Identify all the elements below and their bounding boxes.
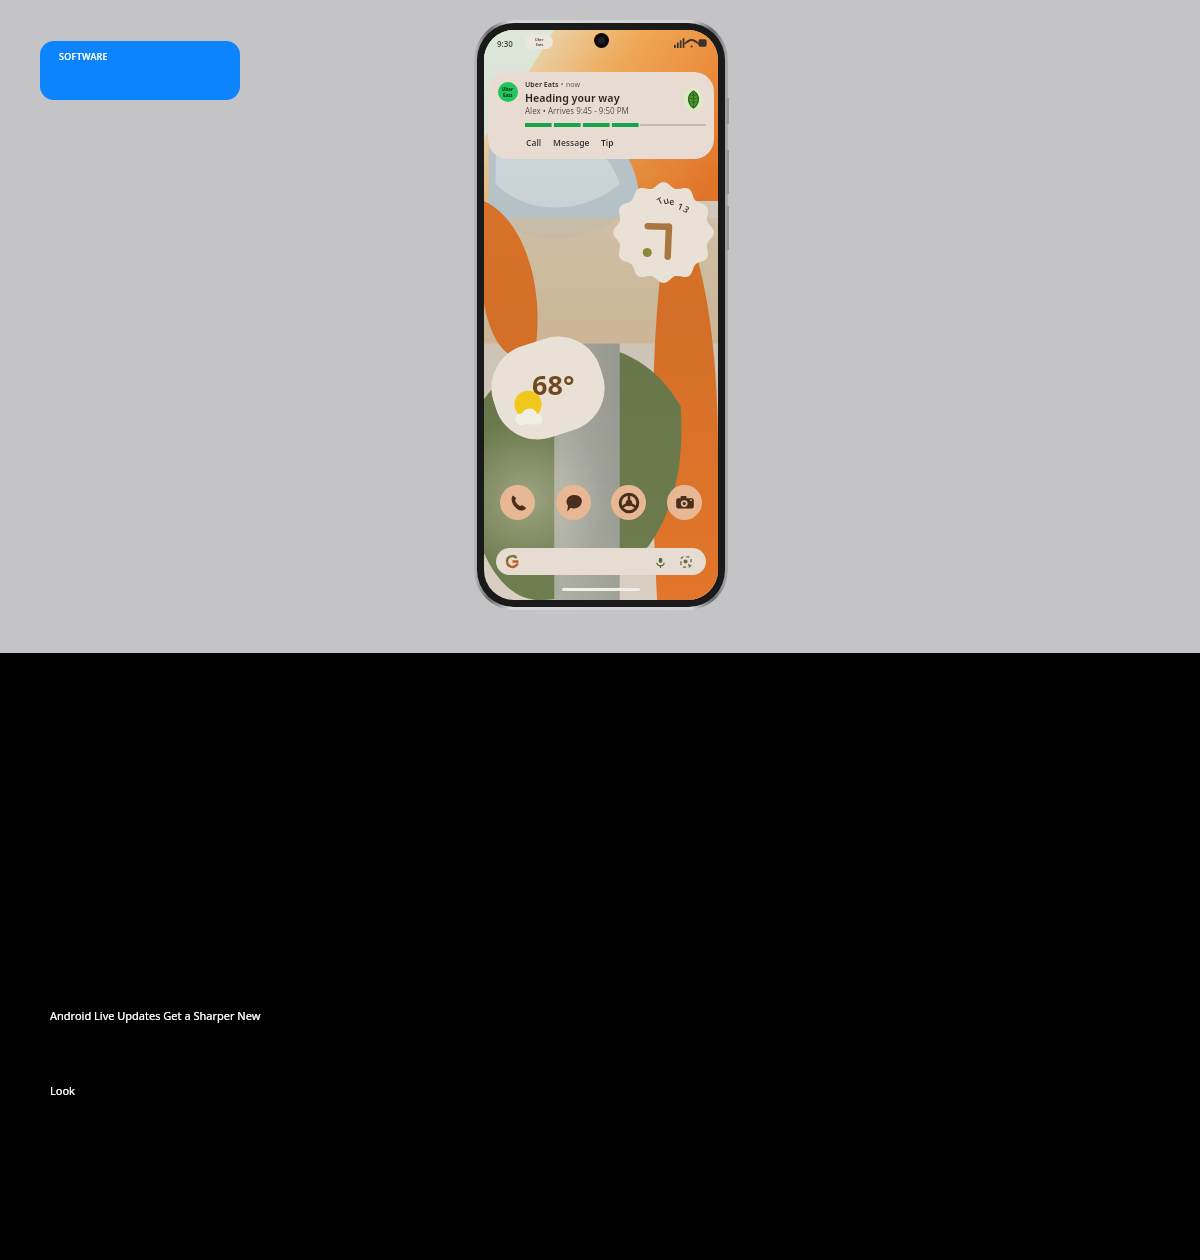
button[interactable]: SOFTWARE (40, 41, 240, 100)
staticText: Look (50, 1083, 75, 1098)
staticText: Android Live Updates Get a Sharper New (50, 1008, 261, 1023)
staticText: Uber (502, 86, 514, 92)
staticText: 68° (532, 366, 575, 403)
staticText: Message (553, 137, 590, 149)
staticText: Alex • Arrives 9:45 - 9:50 PM (525, 105, 629, 116)
staticText: Uber Eats (525, 80, 559, 90)
button[interactable]: Call (525, 136, 543, 150)
staticText: Uber (535, 37, 544, 42)
staticText: now (566, 80, 580, 90)
button[interactable]: Clock, Tuesday 13 (611, 180, 716, 285)
button[interactable]: Messages (556, 485, 591, 520)
button[interactable]: Message (552, 136, 591, 150)
staticText: 3 (681, 202, 693, 216)
staticText: SOFTWARE (59, 50, 108, 62)
button[interactable]: Voice search (652, 554, 668, 570)
button[interactable]: Chrome (611, 485, 646, 520)
staticText: Eats (503, 92, 513, 98)
button[interactable]: Search (496, 548, 706, 575)
button[interactable]: Weather, 68 degrees, partly sunny (492, 340, 604, 436)
button[interactable]: Uber (488, 72, 714, 159)
button[interactable]: Camera (667, 485, 702, 520)
button[interactable]: Google Lens (677, 553, 694, 570)
staticText: 9:30 (497, 38, 513, 49)
staticText: u (662, 193, 670, 207)
staticText: T (655, 193, 665, 207)
staticText: Tip (601, 137, 614, 149)
staticText: Call (526, 137, 542, 149)
staticText: e (669, 195, 675, 207)
button[interactable]: Uber Eats live update (525, 35, 553, 49)
other: Order item (684, 88, 703, 111)
staticText: • (559, 80, 566, 90)
staticText: Heading your way (525, 91, 620, 105)
button[interactable]: Tip (600, 136, 615, 150)
staticText: Eats (536, 42, 544, 47)
button[interactable]: Phone (500, 485, 535, 520)
staticText: 1 (676, 199, 686, 213)
